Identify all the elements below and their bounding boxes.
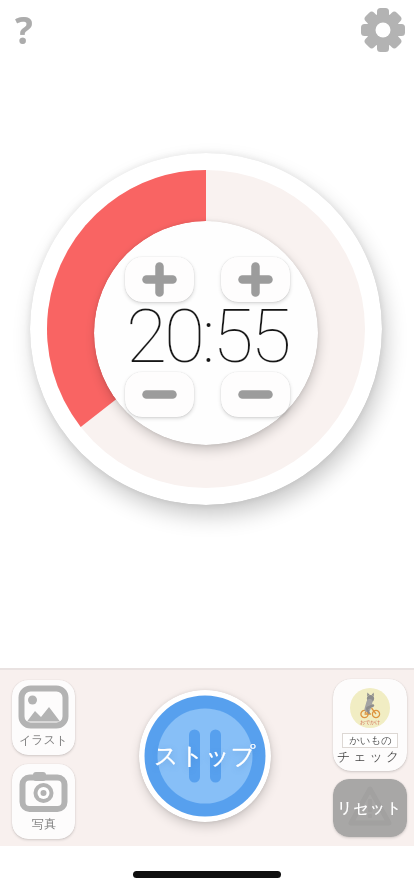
button[interactable] — [125, 257, 194, 302]
button[interactable]: ? — [4, 4, 44, 44]
button[interactable] — [221, 257, 290, 302]
staticText: 写真 — [32, 816, 56, 831]
staticText: おでかけ — [360, 719, 381, 725]
staticText: ? — [15, 4, 33, 44]
button[interactable]: イラスト — [12, 680, 75, 755]
staticText: チェック — [337, 748, 403, 764]
button[interactable] — [221, 372, 290, 417]
button[interactable]: おでかけ — [333, 679, 407, 771]
staticText: ストップ — [154, 741, 257, 771]
button[interactable]: リセット — [333, 779, 407, 837]
staticText: かいもの — [349, 734, 392, 747]
staticText: 20:55 — [126, 292, 289, 380]
button[interactable] — [359, 6, 407, 54]
staticText: イラスト — [19, 732, 69, 747]
button[interactable]: ストップ — [139, 690, 271, 822]
button[interactable]: 写真 — [12, 764, 75, 839]
staticText: リセット — [337, 799, 403, 818]
button[interactable] — [125, 372, 194, 417]
